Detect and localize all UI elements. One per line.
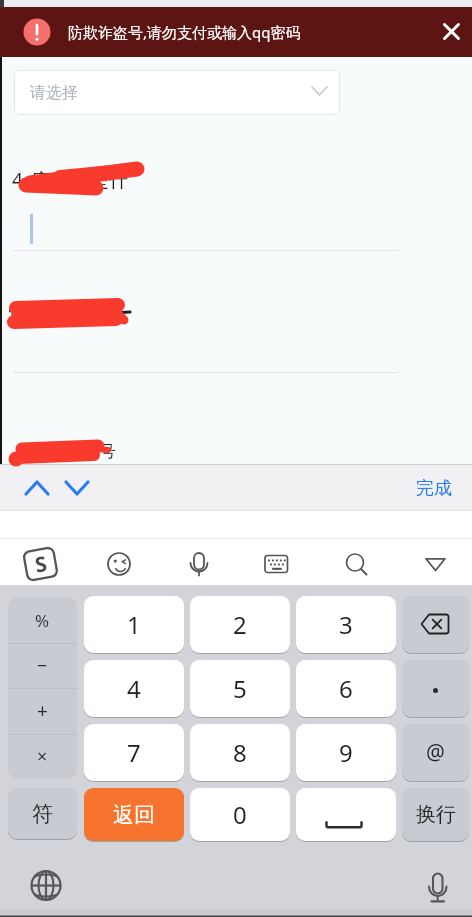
staticText: 8 bbox=[233, 736, 247, 769]
button[interactable] bbox=[253, 540, 297, 584]
button[interactable]: 返回 bbox=[84, 788, 184, 841]
staticText: 宝宝型号 bbox=[48, 441, 116, 462]
staticText: 4. 宝宝号是什 bbox=[12, 167, 128, 193]
staticText: @ bbox=[426, 738, 445, 767]
staticText: 返回 bbox=[113, 802, 155, 828]
button[interactable] bbox=[437, 18, 467, 48]
staticText: 4 bbox=[127, 672, 141, 705]
button[interactable] bbox=[329, 540, 373, 584]
staticText: 防欺诈盗号,请勿支付或输入qq密码 bbox=[68, 22, 301, 42]
staticText: 3 bbox=[339, 608, 353, 641]
button[interactable] bbox=[415, 858, 459, 902]
button[interactable]: 1 bbox=[84, 596, 184, 653]
button[interactable]: @ bbox=[402, 724, 469, 781]
staticText: × bbox=[37, 744, 48, 769]
button[interactable]: 请选择 bbox=[14, 70, 340, 115]
button[interactable] bbox=[174, 540, 218, 584]
staticText: − bbox=[37, 653, 48, 678]
button[interactable]: 符 bbox=[8, 788, 77, 839]
button[interactable] bbox=[402, 596, 469, 653]
button[interactable] bbox=[8, 688, 77, 734]
button[interactable]: 0 bbox=[190, 788, 290, 841]
staticText: 1 bbox=[127, 608, 141, 641]
staticText: 5 bbox=[233, 672, 247, 705]
staticText: % bbox=[35, 609, 50, 632]
button[interactable]: 4 bbox=[84, 660, 184, 717]
button[interactable]: 换行 bbox=[402, 788, 469, 841]
button[interactable]: 3 bbox=[296, 596, 396, 653]
button[interactable] bbox=[8, 597, 77, 643]
button[interactable]: 8 bbox=[190, 724, 290, 781]
button[interactable]: 完成 bbox=[406, 468, 462, 508]
button[interactable] bbox=[18, 540, 62, 584]
staticText: + bbox=[37, 698, 48, 724]
staticText: 9 bbox=[339, 736, 353, 769]
button[interactable]: 2 bbox=[190, 596, 290, 653]
staticText: S bbox=[33, 549, 50, 580]
staticText: 实名认证信 bbox=[8, 305, 93, 326]
button[interactable] bbox=[402, 660, 469, 717]
button[interactable] bbox=[8, 734, 77, 780]
button[interactable]: 6 bbox=[296, 660, 396, 717]
staticText: 换行 bbox=[416, 802, 456, 827]
button[interactable] bbox=[20, 472, 54, 504]
button[interactable] bbox=[8, 643, 77, 689]
staticText: 6 bbox=[339, 672, 353, 705]
button[interactable] bbox=[96, 540, 140, 584]
button[interactable] bbox=[410, 540, 454, 584]
staticText: 2 bbox=[233, 608, 247, 641]
staticText: 完成 bbox=[416, 477, 452, 500]
staticText: 7 bbox=[127, 736, 141, 769]
staticText: 请选择 bbox=[30, 83, 78, 103]
staticText: 0 bbox=[233, 798, 247, 831]
staticText: 符 bbox=[32, 801, 53, 827]
button[interactable]: 5 bbox=[190, 660, 290, 717]
button[interactable] bbox=[60, 472, 94, 504]
button[interactable]: 7 bbox=[84, 724, 184, 781]
button[interactable] bbox=[296, 788, 396, 841]
button[interactable]: 9 bbox=[296, 724, 396, 781]
button[interactable] bbox=[23, 858, 67, 902]
